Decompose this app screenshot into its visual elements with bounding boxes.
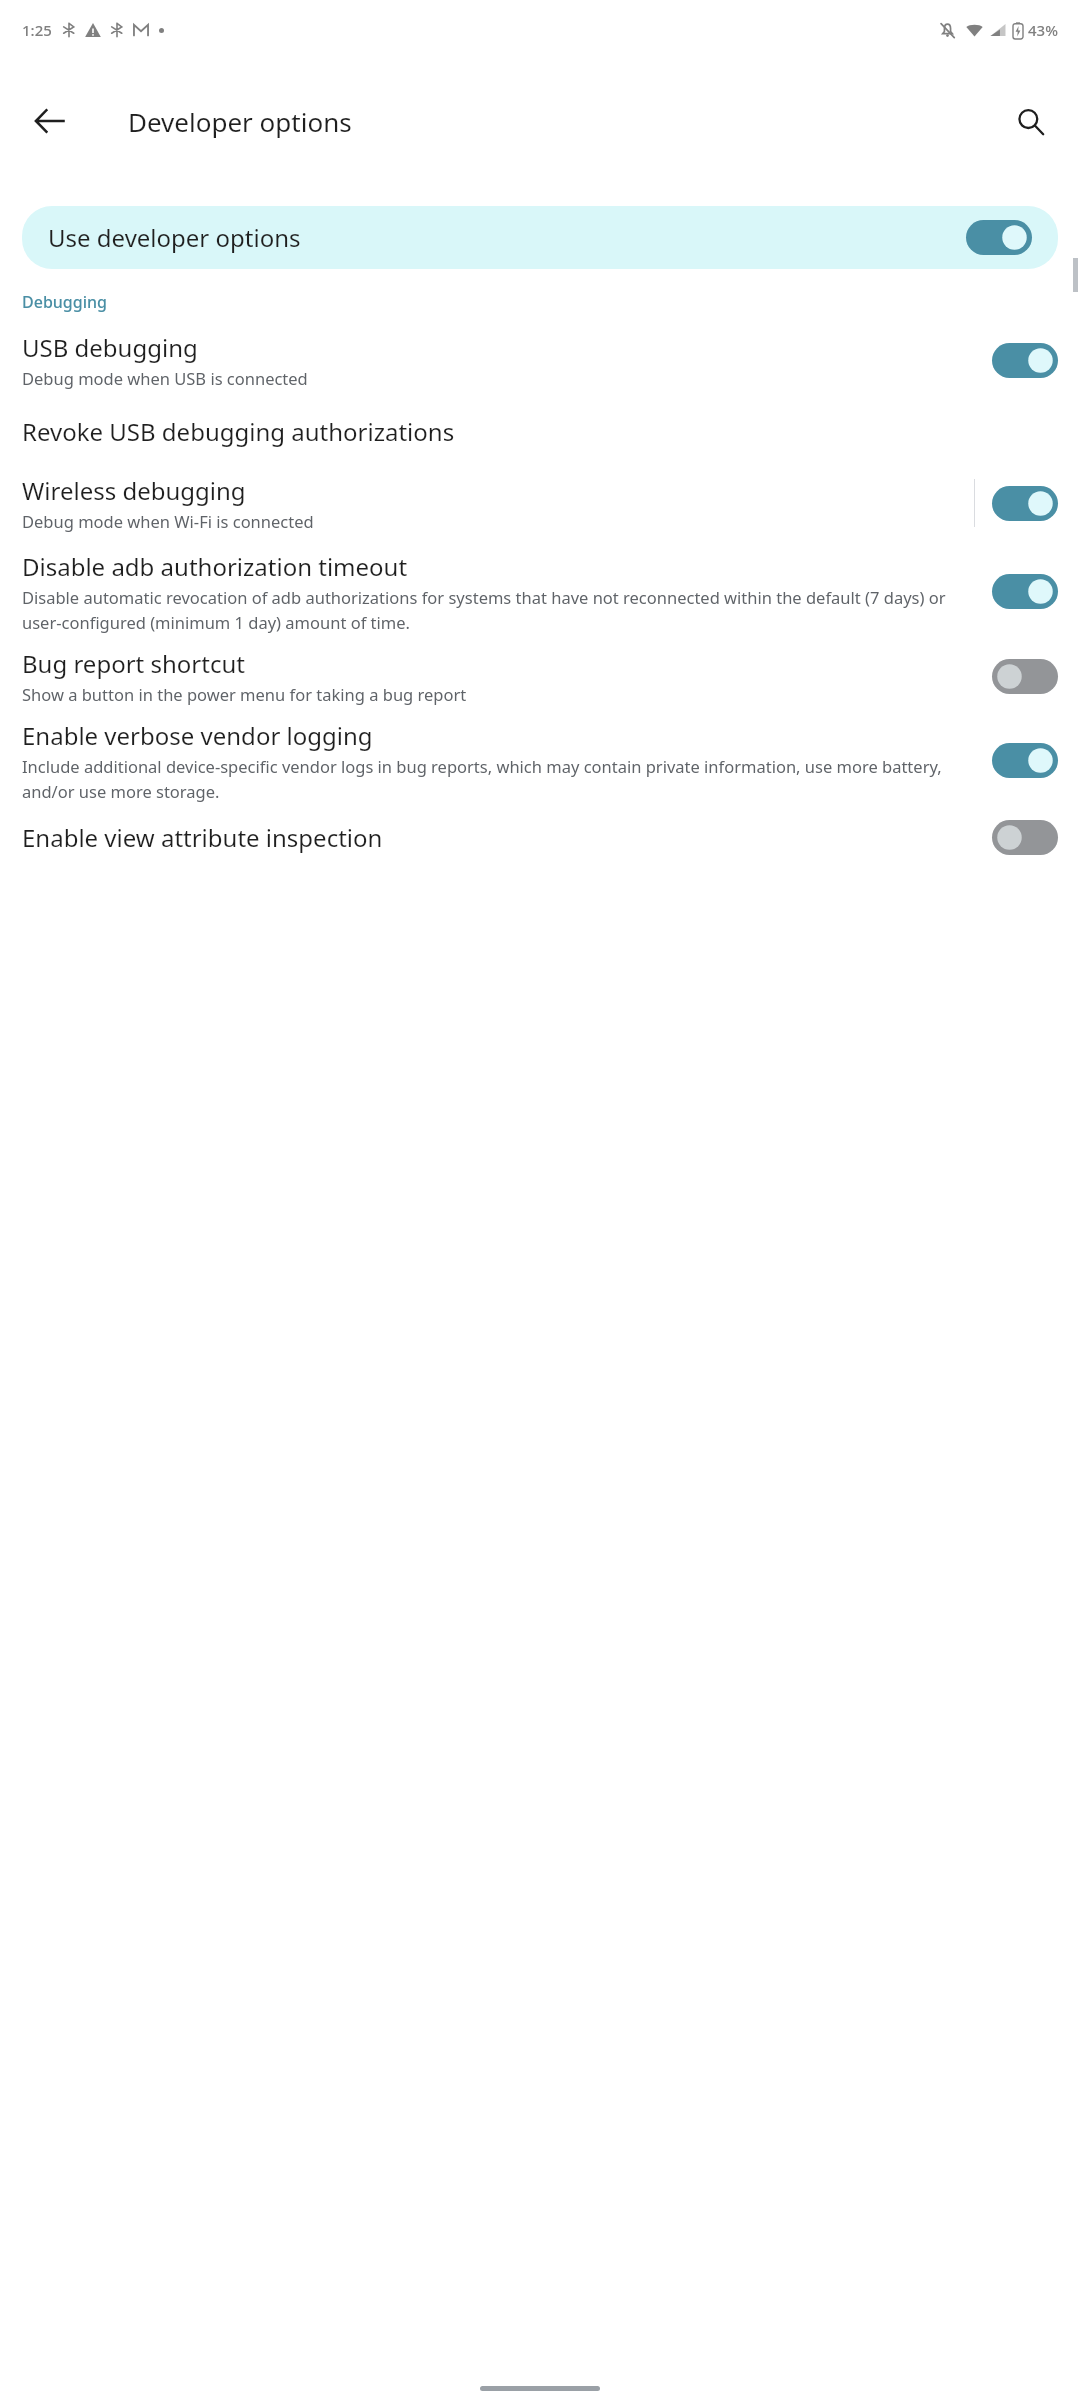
staticText: Include additional device-specific vendo… bbox=[22, 755, 978, 802]
button[interactable]: On bbox=[966, 220, 1032, 255]
staticText: Enable verbose vendor logging bbox=[22, 719, 373, 752]
button[interactable]: On bbox=[992, 343, 1058, 378]
button[interactable]: Disable adb authorization timeout bbox=[0, 550, 1080, 633]
staticText: Disable adb authorization timeout bbox=[22, 550, 408, 583]
button[interactable]: On bbox=[992, 486, 1058, 521]
button[interactable]: Enable view attribute inspection bbox=[0, 820, 1080, 855]
staticText: Debug mode when USB is connected bbox=[22, 367, 308, 389]
staticText: Enable view attribute inspection bbox=[22, 821, 383, 854]
button[interactable]: Enable verbose vendor logging bbox=[0, 719, 1080, 802]
staticText: Disable automatic revocation of adb auth… bbox=[22, 586, 978, 633]
staticText: Developer options bbox=[128, 104, 352, 139]
button[interactable]: Off bbox=[992, 820, 1058, 855]
button[interactable]: Back bbox=[18, 89, 82, 153]
button[interactable]: Bug report shortcut bbox=[0, 647, 1080, 705]
button[interactable]: Off bbox=[992, 659, 1058, 694]
staticText: Debug mode when Wi-Fi is connected bbox=[22, 510, 314, 532]
staticText: Debugging bbox=[22, 291, 107, 313]
staticText: Wireless debugging bbox=[22, 474, 246, 507]
staticText: 1:25 bbox=[22, 20, 52, 40]
staticText: Use developer options bbox=[48, 221, 966, 254]
staticText: Revoke USB debugging authorizations bbox=[22, 415, 455, 448]
button[interactable]: Revoke USB debugging authorizations bbox=[0, 411, 1080, 452]
staticText: Show a button in the power menu for taki… bbox=[22, 683, 467, 705]
staticText: Bug report shortcut bbox=[22, 647, 245, 680]
button[interactable]: On bbox=[992, 743, 1058, 778]
button[interactable]: Wireless debugging bbox=[0, 474, 1080, 532]
staticText: 43% bbox=[1028, 20, 1058, 40]
staticText: USB debugging bbox=[22, 331, 198, 364]
button[interactable]: USB debugging bbox=[0, 331, 1080, 389]
button[interactable]: Use developer options bbox=[22, 206, 1058, 269]
button[interactable]: Search bbox=[998, 89, 1062, 153]
button[interactable]: On bbox=[992, 574, 1058, 609]
